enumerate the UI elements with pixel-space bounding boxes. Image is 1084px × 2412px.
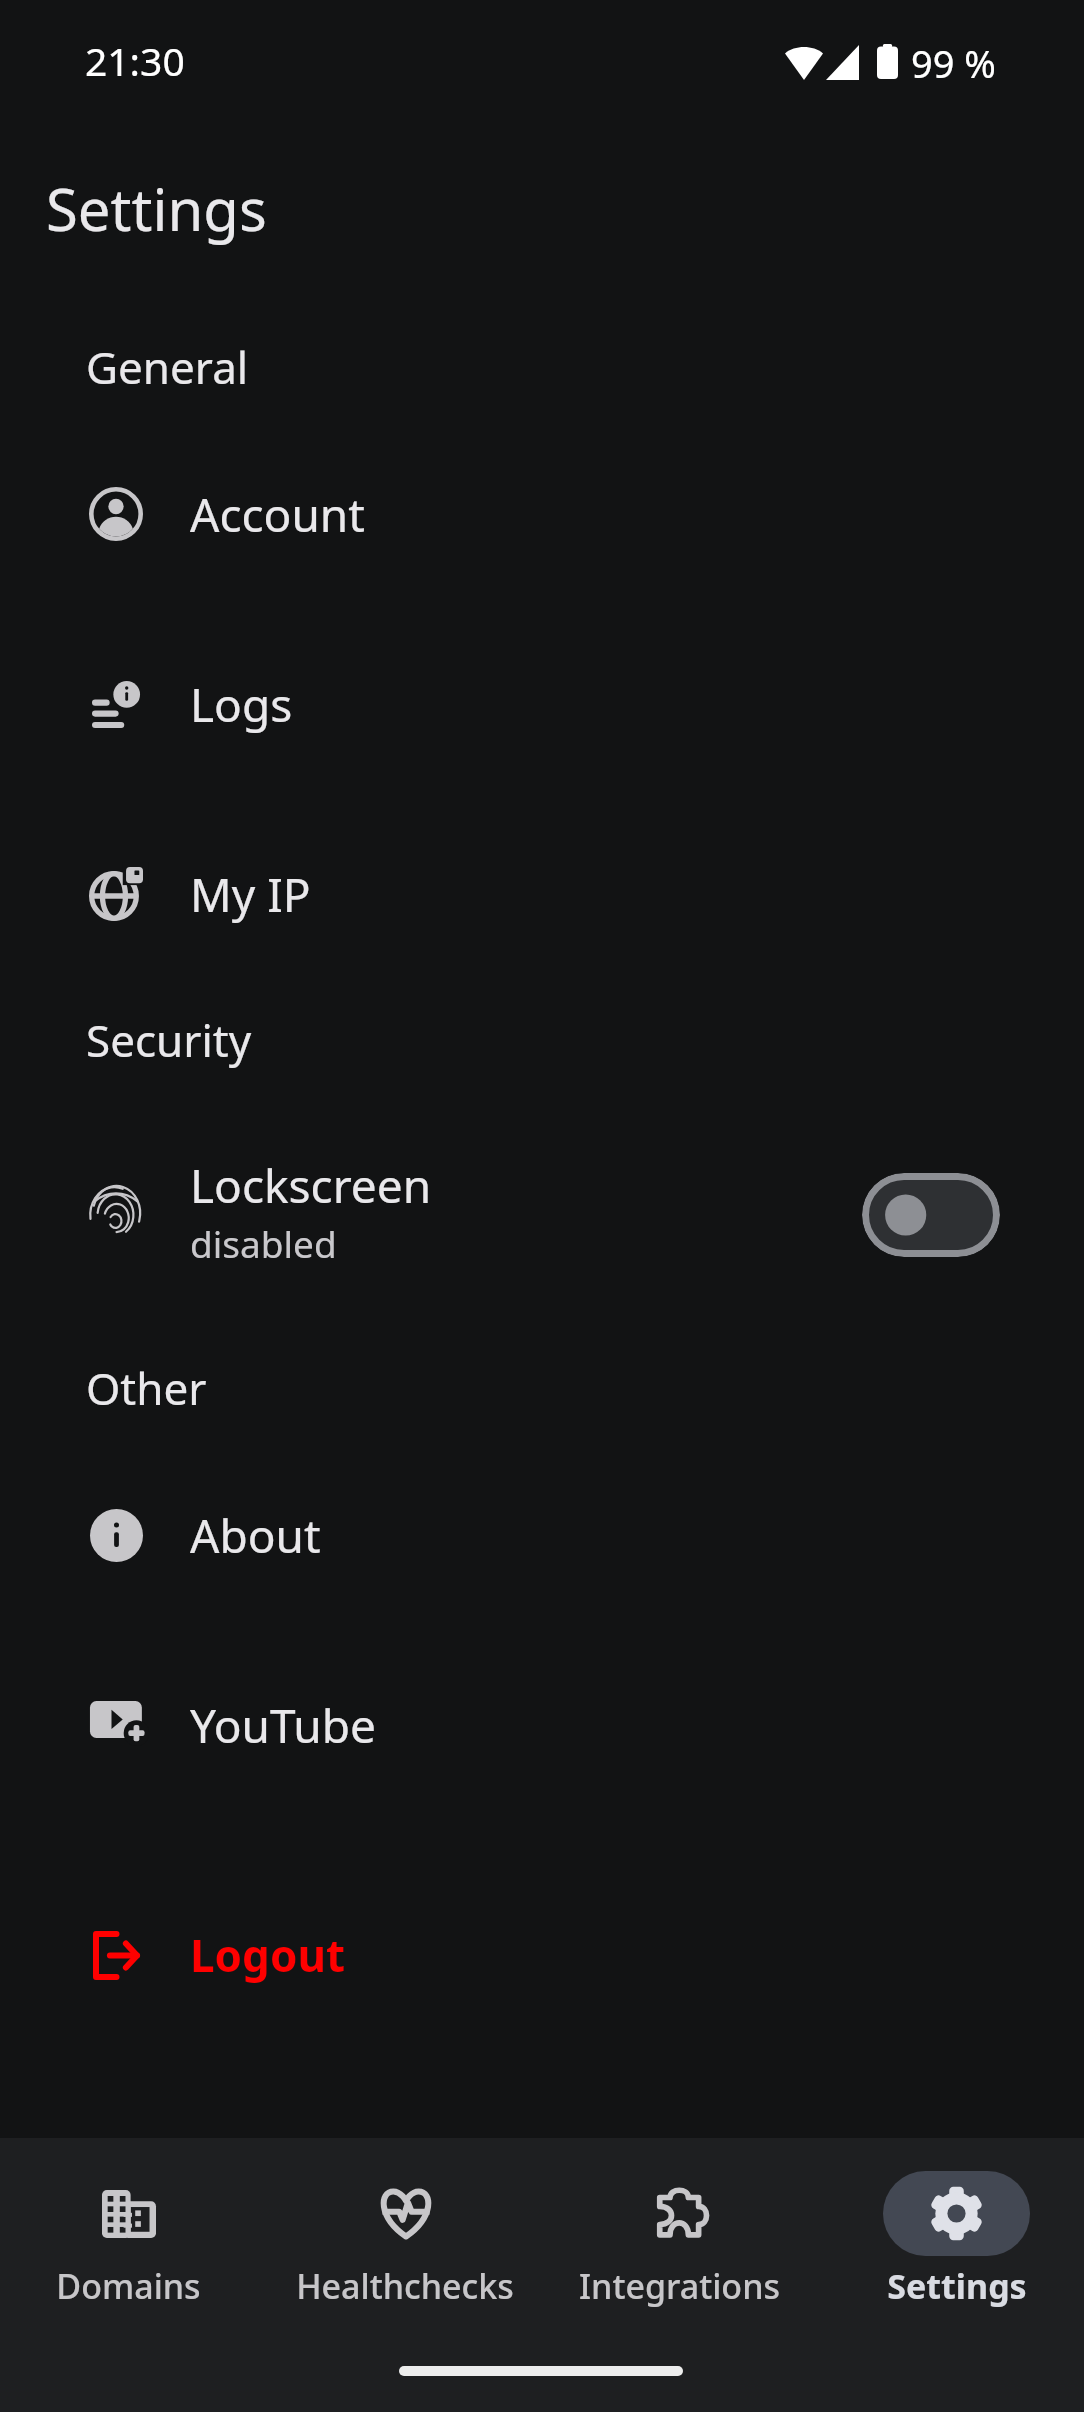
button[interactable]: Toggle lockscreen — [862, 1173, 1000, 1257]
staticText: disabled — [190, 1218, 337, 1268]
staticText: Integrations — [579, 2263, 780, 2309]
button[interactable]: Integrations — [541, 2138, 817, 2328]
staticText: Other — [86, 1358, 207, 1418]
staticText: General — [86, 337, 249, 397]
button[interactable]: About — [0, 1440, 1084, 1630]
staticText: 99 % — [911, 37, 996, 89]
staticText: YouTube — [190, 1694, 376, 1757]
button[interactable]: Logout — [0, 1860, 1084, 2050]
staticText: Lockscreen — [190, 1154, 432, 1217]
staticText: Logout — [190, 1925, 346, 1985]
staticText: Settings — [46, 169, 267, 248]
button[interactable]: Healthchecks — [267, 2138, 543, 2328]
button[interactable]: Lockscreen — [0, 1092, 1084, 1337]
button[interactable]: YouTube — [0, 1630, 1084, 1820]
button[interactable]: Settings — [818, 2138, 1084, 2328]
staticText: Security — [86, 1010, 252, 1070]
button[interactable]: My IP — [0, 799, 1084, 989]
staticText: Account — [190, 483, 365, 546]
staticText: My IP — [190, 863, 311, 926]
button[interactable]: Domains — [0, 2138, 266, 2328]
button[interactable]: Account — [0, 419, 1084, 609]
staticText: Healthchecks — [296, 2263, 514, 2309]
staticText: Settings — [887, 2263, 1027, 2309]
staticText: 21:30 — [85, 34, 185, 87]
staticText: About — [190, 1504, 321, 1567]
staticText: Logs — [190, 673, 293, 736]
button[interactable]: Logs — [0, 609, 1084, 799]
staticText: Domains — [56, 2263, 201, 2309]
